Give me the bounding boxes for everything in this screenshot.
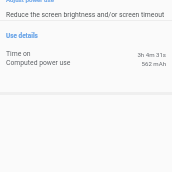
button[interactable]: Use details: [0, 27, 44, 45]
staticText: 3h 4m 31s: [35, 51, 166, 58]
staticText: 562 mAh: [75, 60, 166, 67]
staticText: Computed power use: [6, 59, 71, 67]
staticText: Reduce the screen brightness and/or scre…: [6, 11, 165, 19]
button[interactable]: Adjust power use: [0, 0, 172, 3]
staticText: Use details: [6, 32, 38, 40]
button[interactable]: Computed power use: [0, 58, 172, 68]
staticText: Adjust power use: [6, 0, 54, 3]
staticText: Time on: [6, 50, 31, 58]
button[interactable]: Time on: [0, 49, 172, 59]
